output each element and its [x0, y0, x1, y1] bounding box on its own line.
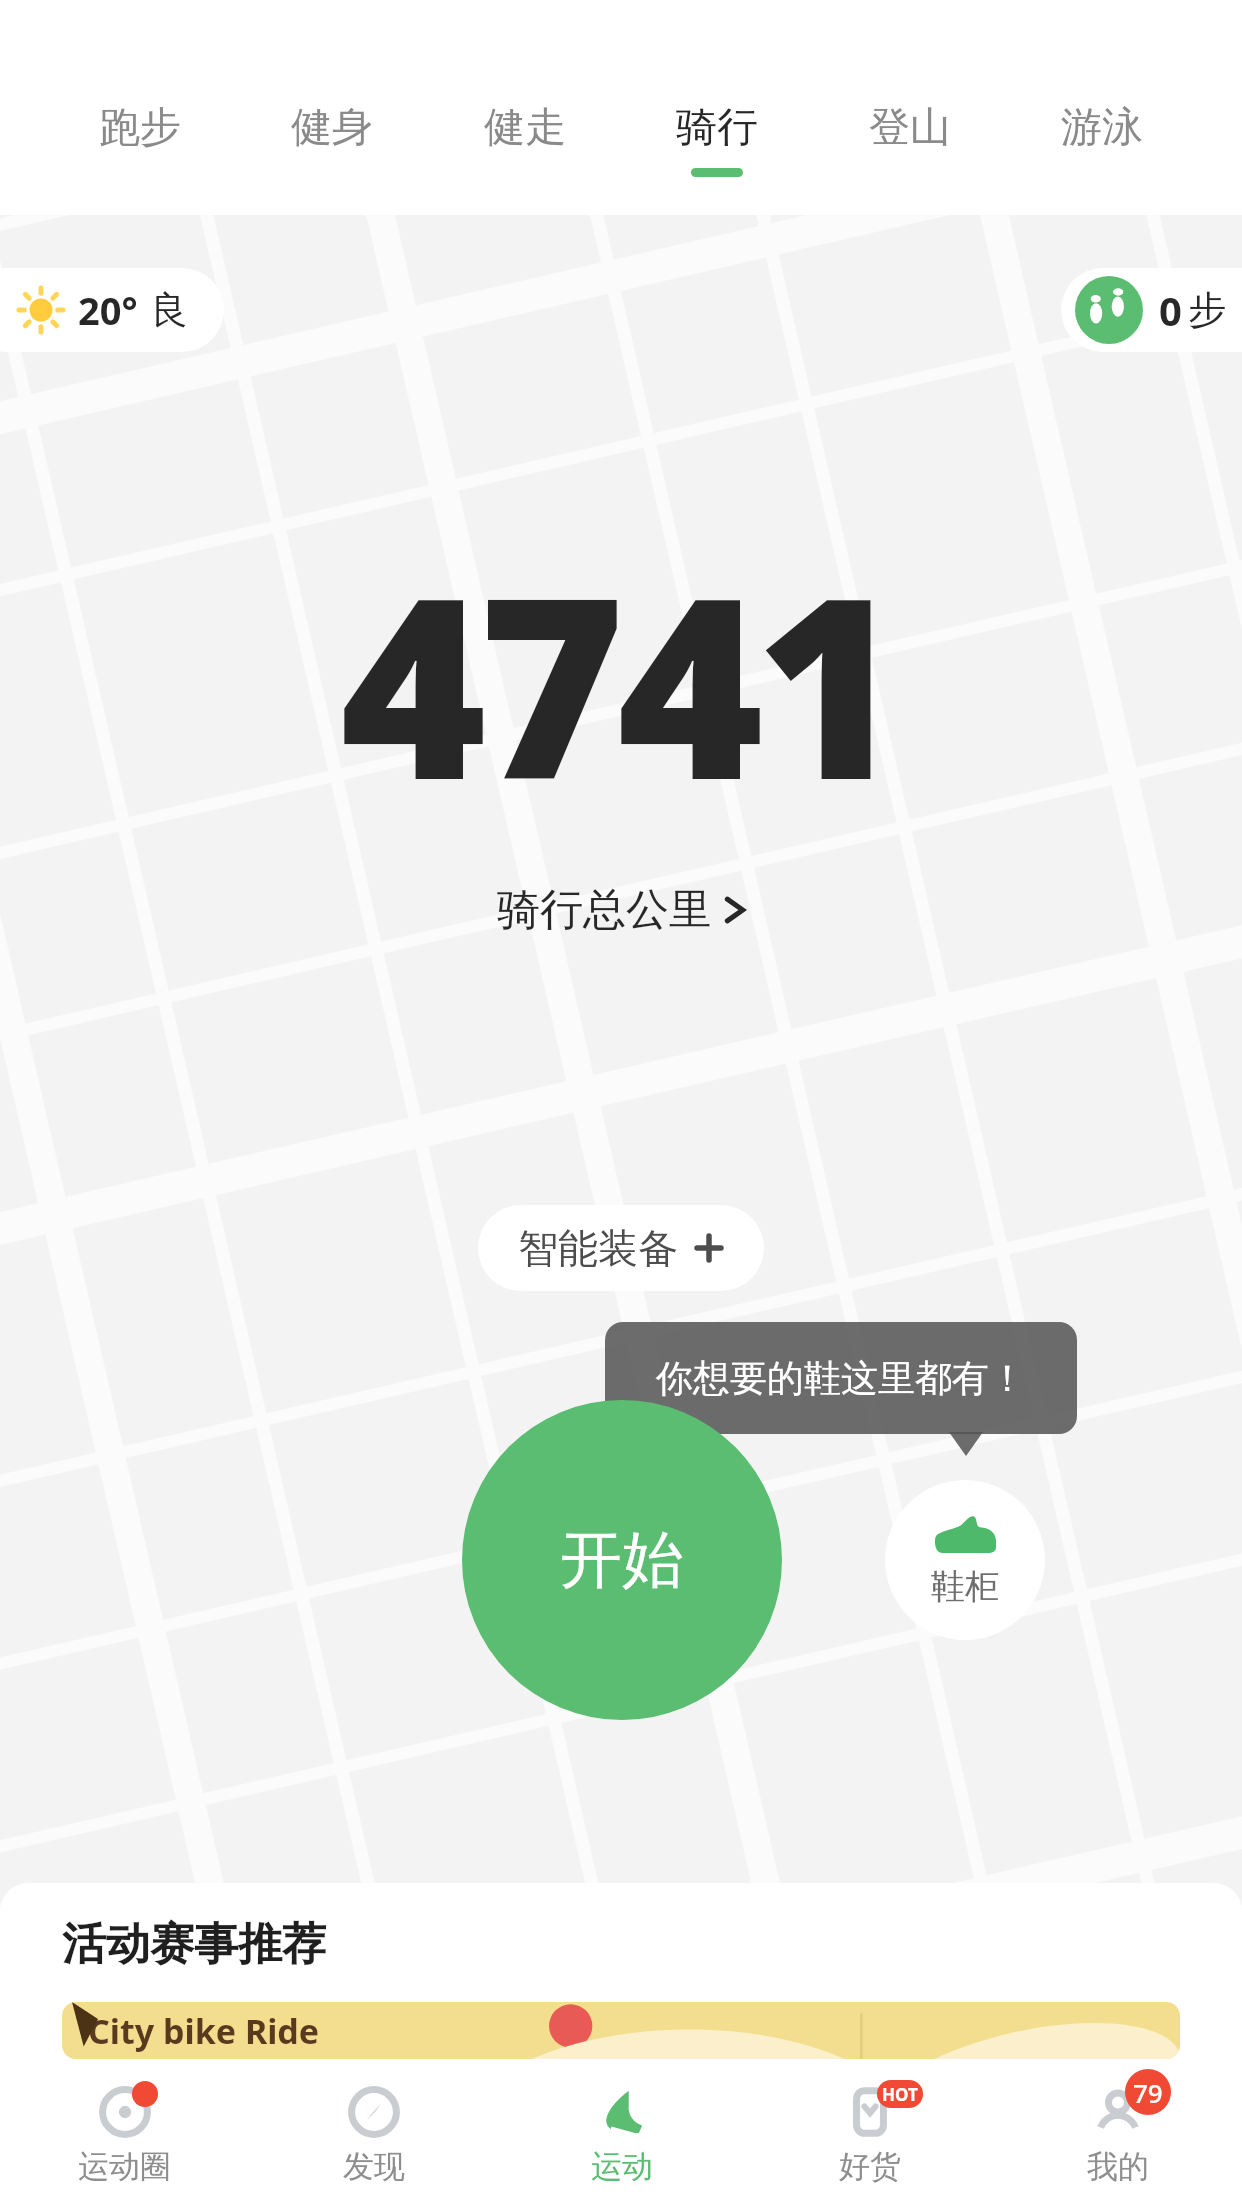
staticText: 0 [1159, 283, 1182, 337]
button[interactable]: 游泳 [1049, 96, 1155, 183]
staticText: 20° [78, 284, 138, 336]
staticText: 你想要的鞋这里都有！ [656, 1355, 1026, 1402]
staticText: HOT [882, 2083, 918, 2106]
staticText: 运动 [591, 2147, 653, 2186]
button[interactable]: 开始 [462, 1400, 782, 1720]
button[interactable]: 骑行 [664, 96, 770, 183]
button[interactable]: 登山 [857, 96, 963, 183]
button[interactable]: 健走 [472, 96, 578, 183]
staticText: 健走 [484, 102, 566, 154]
staticText: 运动圈 [78, 2147, 171, 2186]
staticText: 79 [1133, 2075, 1163, 2110]
staticText: 鞋柜 [931, 1565, 999, 1608]
button[interactable]: 智能装备 [478, 1205, 764, 1291]
staticText: 游泳 [1061, 102, 1143, 154]
button[interactable]: 运动 [498, 2073, 746, 2194]
button[interactable]: 运动圈 [0, 2073, 249, 2194]
staticText: 骑行总公里 [497, 883, 712, 937]
button[interactable]: 健身 [279, 96, 385, 183]
staticText: 好货 [839, 2147, 901, 2186]
staticText: 我的 [1087, 2147, 1149, 2186]
button[interactable]: HOT [746, 2073, 994, 2194]
staticText: 良 [150, 286, 188, 334]
staticText: 4741 [344, 512, 898, 853]
button[interactable]: 鞋柜 [885, 1480, 1045, 1640]
button[interactable]: 发现 [249, 2073, 498, 2194]
staticText: 骑行 [676, 102, 758, 154]
staticText: 活动赛事推荐 [62, 1917, 326, 1972]
button[interactable]: 79 [994, 2073, 1242, 2194]
staticText: 智能装备 [518, 1223, 678, 1273]
staticText: 开始 [560, 1521, 684, 1599]
button[interactable]: 跑步 [87, 96, 193, 183]
staticText: 发现 [343, 2147, 405, 2186]
button[interactable]: 活动赛事推荐 [0, 1883, 1242, 2059]
staticText: 跑步 [99, 102, 181, 154]
button[interactable]: 20° [0, 268, 224, 352]
staticText: 步 [1188, 286, 1226, 334]
button[interactable]: 骑行总公里 [477, 875, 766, 945]
staticText: 登山 [869, 102, 951, 154]
staticText: City bike Ride [88, 2008, 320, 2054]
staticText: 健身 [291, 102, 373, 154]
button[interactable]: 0 [1061, 268, 1242, 352]
